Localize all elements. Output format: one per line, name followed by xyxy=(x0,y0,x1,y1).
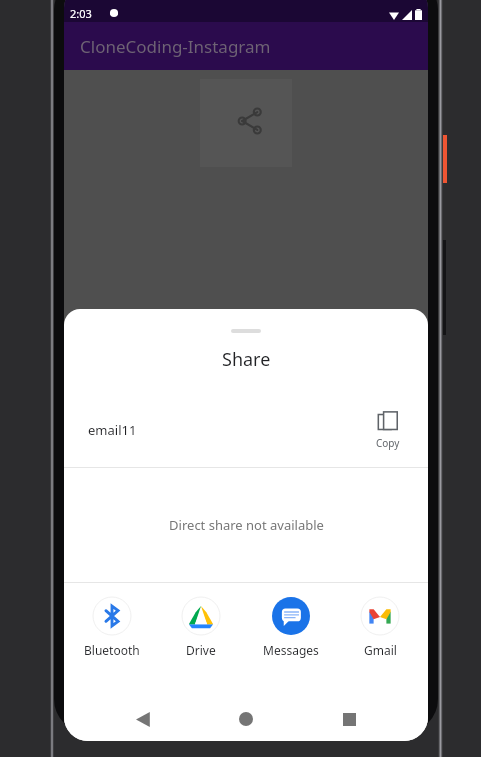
button[interactable]: Gmail xyxy=(339,597,421,658)
staticText: Gmail xyxy=(364,642,397,658)
staticText: CloneCoding-Instagram xyxy=(80,35,271,58)
staticText: Share xyxy=(222,347,271,372)
staticText: Messages xyxy=(263,642,319,658)
staticText: 2:03 xyxy=(70,6,92,21)
button[interactable]: Messages xyxy=(250,597,332,658)
staticText: Drive xyxy=(186,642,216,658)
button[interactable]: Drive xyxy=(160,597,242,658)
staticText: Copy xyxy=(376,436,400,450)
button[interactable]: Bluetooth xyxy=(71,597,153,658)
button[interactable]: Copy xyxy=(372,411,404,450)
button[interactable]: CloneCoding-Instagram xyxy=(64,22,428,70)
button[interactable]: Home xyxy=(222,697,270,741)
button[interactable]: Back xyxy=(119,697,167,741)
staticText: Direct share not available xyxy=(169,516,324,534)
button[interactable] xyxy=(231,329,261,333)
staticText: email11 xyxy=(88,421,372,439)
staticText: Bluetooth xyxy=(84,642,140,658)
button[interactable]: Recents xyxy=(325,697,373,741)
